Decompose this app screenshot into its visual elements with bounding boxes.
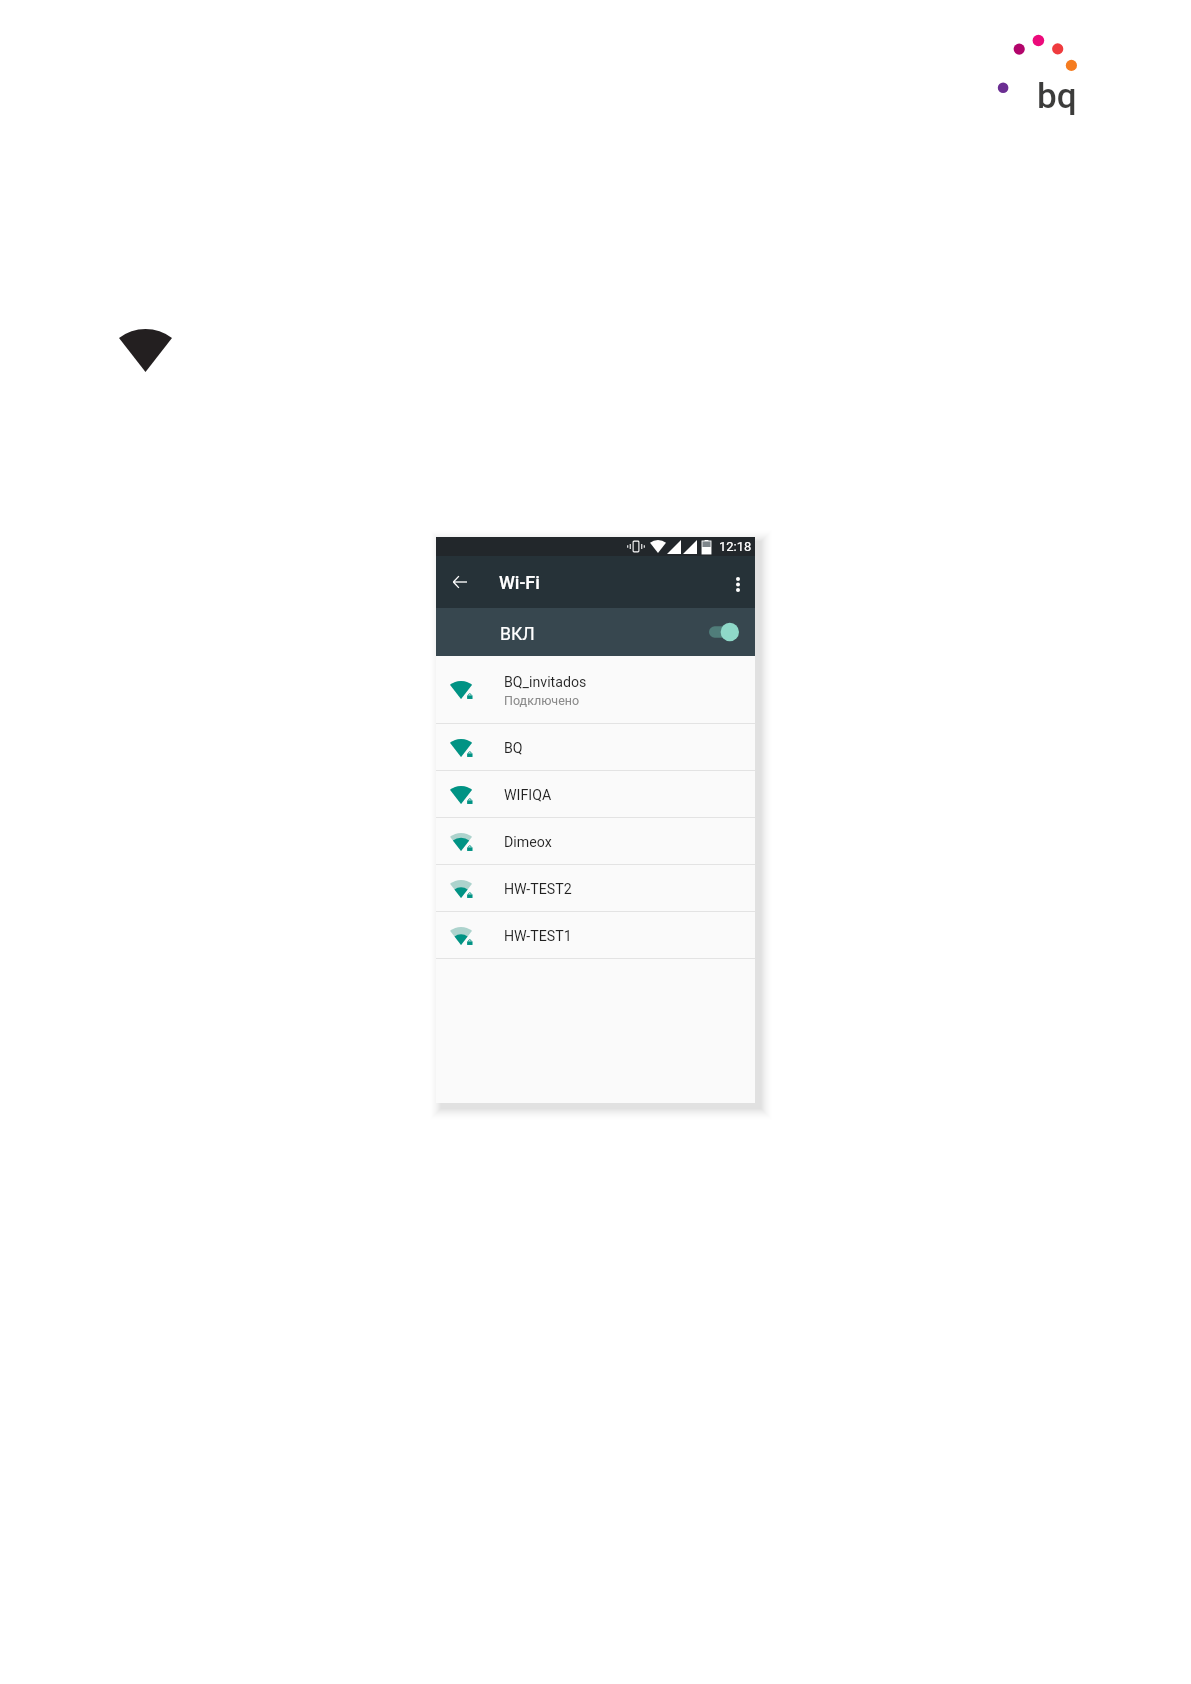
staticText: BQ_invitados [504, 674, 587, 691]
button[interactable]: Back [436, 558, 484, 606]
button[interactable]: Dimeox [436, 818, 755, 864]
staticText: Подключено [504, 693, 580, 708]
button[interactable]: HW-TEST2 [436, 865, 755, 911]
staticText: Dimeox [504, 834, 552, 851]
staticText: ВКЛ [500, 624, 535, 645]
staticText: HW-TEST2 [504, 881, 572, 898]
button[interactable]: More options [721, 558, 755, 606]
button[interactable]: WIFIQA [436, 771, 755, 817]
staticText: HW-TEST1 [504, 928, 572, 945]
button[interactable]: BQ_invitados [436, 656, 755, 723]
staticText: 12:18 [719, 539, 752, 554]
staticText: bq [1037, 76, 1077, 117]
button[interactable]: HW-TEST1 [436, 912, 755, 958]
button[interactable]: ВКЛ [436, 608, 755, 656]
staticText: BQ [504, 740, 523, 757]
staticText: Wi-Fi [499, 572, 540, 593]
staticText: WIFIQA [504, 787, 552, 804]
button[interactable]: BQ [436, 724, 755, 770]
